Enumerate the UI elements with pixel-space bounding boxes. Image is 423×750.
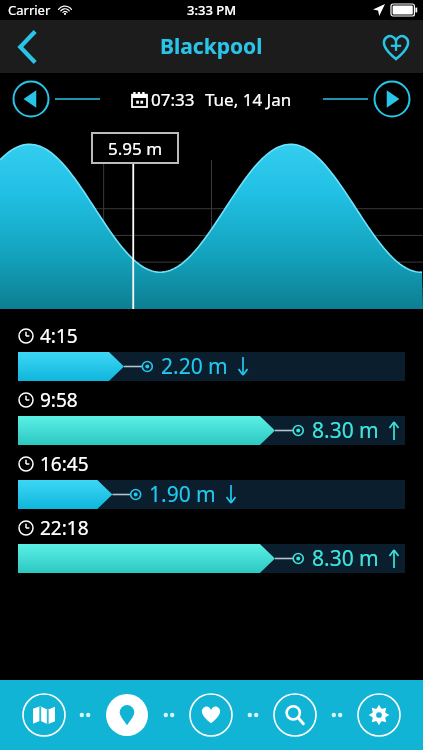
button[interactable]: Location <box>93 680 161 750</box>
staticText: 1.90 m <box>149 480 216 509</box>
button[interactable]: Previous day <box>12 80 50 118</box>
button[interactable]: Search <box>261 680 329 750</box>
button[interactable]: 07:33 <box>132 88 292 111</box>
staticText: 16:45 <box>40 451 89 477</box>
staticText: 8.30 m <box>312 544 379 573</box>
staticText: 8.30 m <box>312 416 379 445</box>
button[interactable]: Settings <box>345 680 413 750</box>
button[interactable]: Add to favourites <box>369 20 423 73</box>
staticText: 5.95 m <box>108 137 163 160</box>
button[interactable]: Back <box>0 20 54 73</box>
staticText: 22:18 <box>40 515 89 541</box>
staticText: 3:33 PM <box>187 1 237 19</box>
staticText: 2.20 m <box>161 352 228 381</box>
staticText: 9:58 <box>40 387 78 413</box>
staticText: 07:33 <box>151 88 195 111</box>
button[interactable]: Next day <box>373 80 411 118</box>
staticText: Tue, 14 Jan <box>205 88 292 111</box>
button[interactable]: 16:45 <box>0 445 423 509</box>
button[interactable]: Map <box>10 680 77 750</box>
button[interactable]: Favourites <box>177 680 245 750</box>
button[interactable]: 9:58 <box>0 381 423 445</box>
staticText: Blackpool <box>160 32 263 61</box>
button[interactable]: 22:18 <box>0 509 423 573</box>
button[interactable]: 4:15 <box>0 317 423 381</box>
staticText: 4:15 <box>40 323 78 349</box>
staticText: Carrier <box>8 1 51 19</box>
